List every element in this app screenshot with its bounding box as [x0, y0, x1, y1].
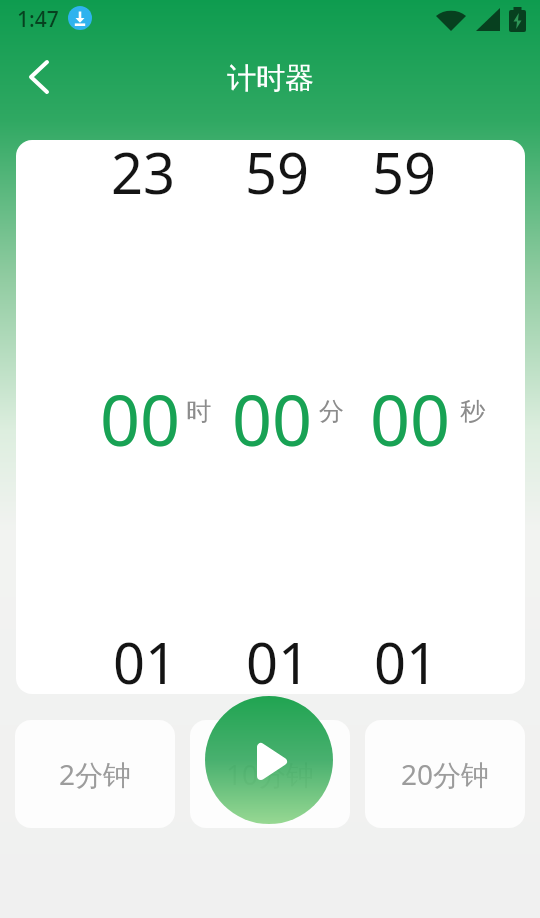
button[interactable]: 2分钟: [15, 720, 175, 828]
staticText: 59: [372, 134, 437, 210]
staticText: 59: [245, 134, 310, 210]
staticText: 00: [370, 371, 451, 466]
staticText: 01: [246, 624, 311, 700]
staticText: 2分钟: [59, 755, 132, 793]
staticText: 分: [319, 396, 344, 427]
staticText: 01: [374, 624, 439, 700]
staticText: 00: [100, 371, 181, 466]
staticText: 10分钟: [226, 755, 315, 793]
staticText: 23: [111, 134, 176, 210]
staticText: 01: [113, 624, 178, 700]
staticText: 20分钟: [401, 755, 490, 793]
staticText: 时: [186, 396, 211, 427]
button[interactable]: 10分钟: [190, 720, 350, 828]
button[interactable]: 20分钟: [365, 720, 525, 828]
staticText: 秒: [460, 396, 485, 427]
button[interactable]: [205, 696, 333, 824]
staticText: 计时器: [227, 60, 314, 97]
staticText: 1:47: [17, 5, 59, 34]
staticText: 00: [232, 371, 313, 466]
button[interactable]: [24, 58, 54, 96]
